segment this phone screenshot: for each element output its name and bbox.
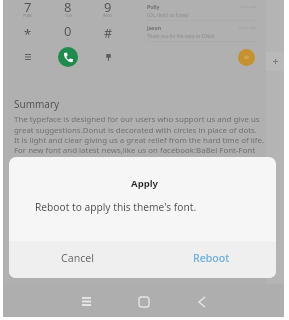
button[interactable]: 8 bbox=[48, 0, 88, 22]
staticText: Summary bbox=[14, 97, 60, 111]
staticText: Apply bbox=[131, 177, 159, 190]
staticText: 8 bbox=[64, 0, 72, 16]
button[interactable]: Keypad bbox=[7, 46, 48, 68]
button[interactable]: New conversation bbox=[238, 49, 255, 66]
button[interactable]: Back bbox=[180, 284, 224, 317]
button[interactable]: Recents bbox=[64, 284, 108, 317]
staticText: PQRS bbox=[23, 13, 33, 18]
staticText: Polly bbox=[147, 3, 160, 10]
staticText: Thank you for the reply to O'Neil. bbox=[147, 33, 216, 39]
button[interactable]: Call bbox=[58, 47, 78, 67]
staticText: The typeface is designed for our users w… bbox=[14, 114, 265, 155]
button[interactable]: Cancel bbox=[45, 242, 109, 274]
staticText: Jason bbox=[147, 24, 162, 31]
staticText: 9 bbox=[104, 0, 112, 16]
staticText: Reboot bbox=[193, 251, 230, 265]
staticText: 0 bbox=[64, 22, 72, 40]
staticText: WXYZ bbox=[103, 13, 113, 18]
staticText: LOL, that's so funny! bbox=[147, 12, 189, 18]
staticText: * bbox=[24, 25, 32, 43]
staticText: 7 bbox=[24, 0, 32, 16]
button[interactable]: 7 bbox=[7, 0, 48, 22]
staticText: Cancel bbox=[61, 251, 94, 265]
button[interactable]: Video call bbox=[88, 46, 128, 68]
staticText: # bbox=[104, 25, 113, 42]
button[interactable]: * bbox=[7, 22, 48, 45]
button[interactable]: Polly bbox=[142, 0, 262, 20]
button[interactable]: 0 bbox=[48, 22, 88, 45]
button[interactable]: Jason bbox=[142, 21, 262, 41]
staticText: 2 min ago bbox=[239, 25, 256, 30]
button[interactable]: 9 bbox=[88, 0, 128, 22]
staticText: + bbox=[67, 36, 70, 41]
staticText: Reboot to apply this theme's font. bbox=[35, 200, 197, 214]
staticText: 1 min ago bbox=[239, 4, 256, 9]
button[interactable]: Reboot bbox=[179, 242, 243, 274]
button[interactable]: Add app bbox=[266, 52, 284, 71]
button[interactable]: # bbox=[88, 22, 128, 45]
button[interactable]: Home bbox=[122, 284, 166, 317]
staticText: TUV bbox=[65, 13, 72, 18]
